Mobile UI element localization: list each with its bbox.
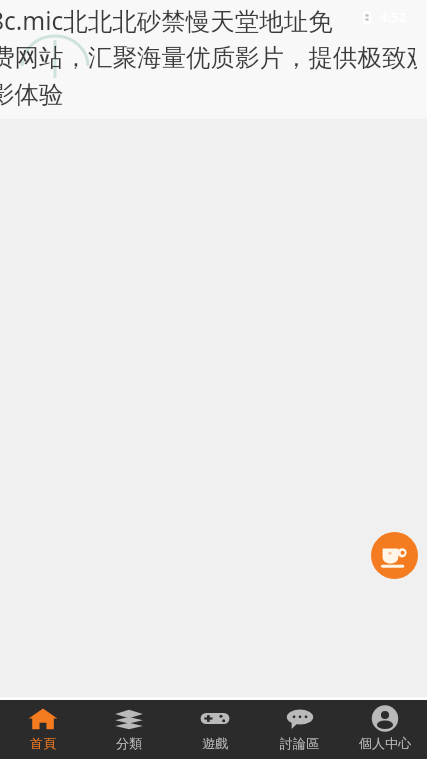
staticText: 首頁 <box>30 735 56 751</box>
staticText: 遊戲 <box>202 735 228 751</box>
button[interactable]: 討論區 <box>257 700 342 751</box>
button[interactable]: 遊戲 <box>172 700 257 751</box>
button[interactable]: Coffee <box>371 532 418 579</box>
button[interactable]: 分類 <box>86 700 172 751</box>
button[interactable]: 首頁 <box>0 700 86 751</box>
button[interactable]: 個人中心 <box>342 700 427 751</box>
staticText: 8c.mic北北北砂禁慢天堂地址免 <box>0 4 333 37</box>
staticText: 討論區 <box>280 735 319 751</box>
staticText: 個人中心 <box>359 735 411 751</box>
staticText: 影体验 <box>0 79 64 110</box>
staticText: 费网站，汇聚海量优质影片，提供极致观 <box>0 42 417 73</box>
staticText: 分類 <box>116 735 142 751</box>
